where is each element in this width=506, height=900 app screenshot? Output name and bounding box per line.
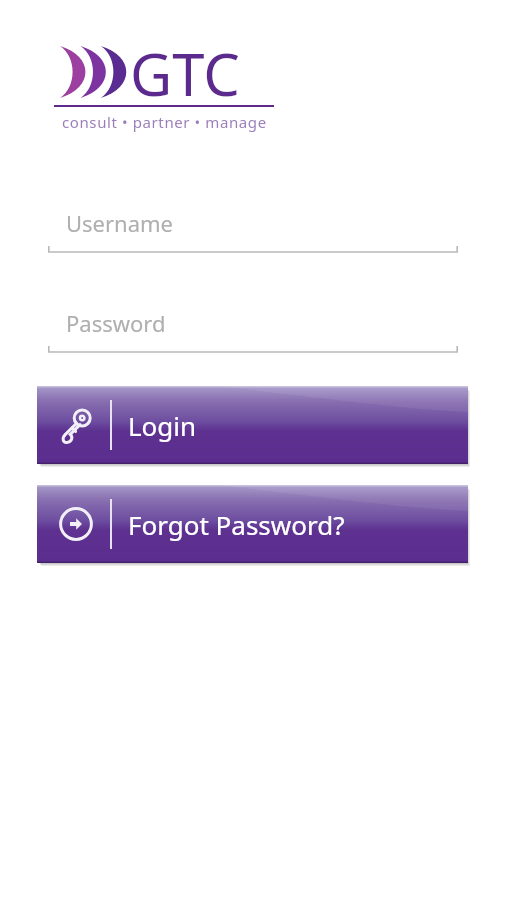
button[interactable]: Username [48,200,458,258]
button[interactable]: Forgot Password [37,485,468,563]
button[interactable]: Password [48,300,458,358]
staticText: Username [66,208,174,238]
staticText: consult • partner • manage [62,112,267,132]
other: Forgot Password [56,504,96,544]
staticText: Forgot Password? [128,507,345,542]
button[interactable]: Login [37,386,468,464]
staticText: Login [128,408,197,443]
other: Login [56,405,96,445]
staticText: Password [66,308,166,338]
staticText: GTC [130,34,240,106]
